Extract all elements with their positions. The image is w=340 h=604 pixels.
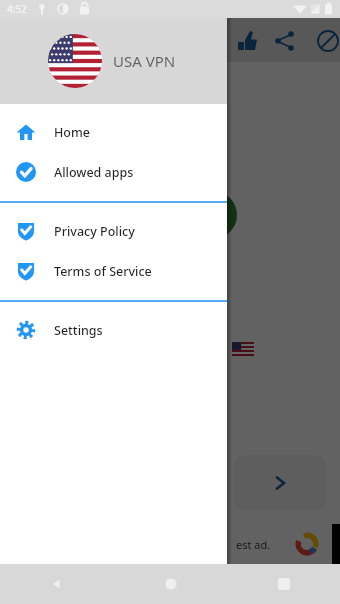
button[interactable]: Home <box>0 112 227 152</box>
button[interactable]: Privacy Policy <box>0 211 227 251</box>
staticText: Allowed apps <box>54 164 134 181</box>
staticText: Terms of Service <box>54 263 152 280</box>
button[interactable]: Allowed apps <box>0 152 227 192</box>
staticText: Home <box>54 124 91 141</box>
button[interactable]: Home <box>114 564 227 604</box>
staticText: USA VPN <box>113 51 176 71</box>
button[interactable]: Settings <box>0 310 227 350</box>
button[interactable] <box>234 455 326 510</box>
staticText: Privacy Policy <box>54 223 135 240</box>
other: Settings <box>16 320 36 340</box>
other: Allowed apps <box>16 162 36 182</box>
button[interactable]: Terms of Service <box>0 251 227 291</box>
staticText: 4:52 <box>7 2 27 16</box>
staticText: est ad. <box>236 537 271 552</box>
staticText: Settings <box>54 322 103 339</box>
other: Home <box>16 122 36 142</box>
button[interactable]: Recent apps <box>227 564 340 604</box>
